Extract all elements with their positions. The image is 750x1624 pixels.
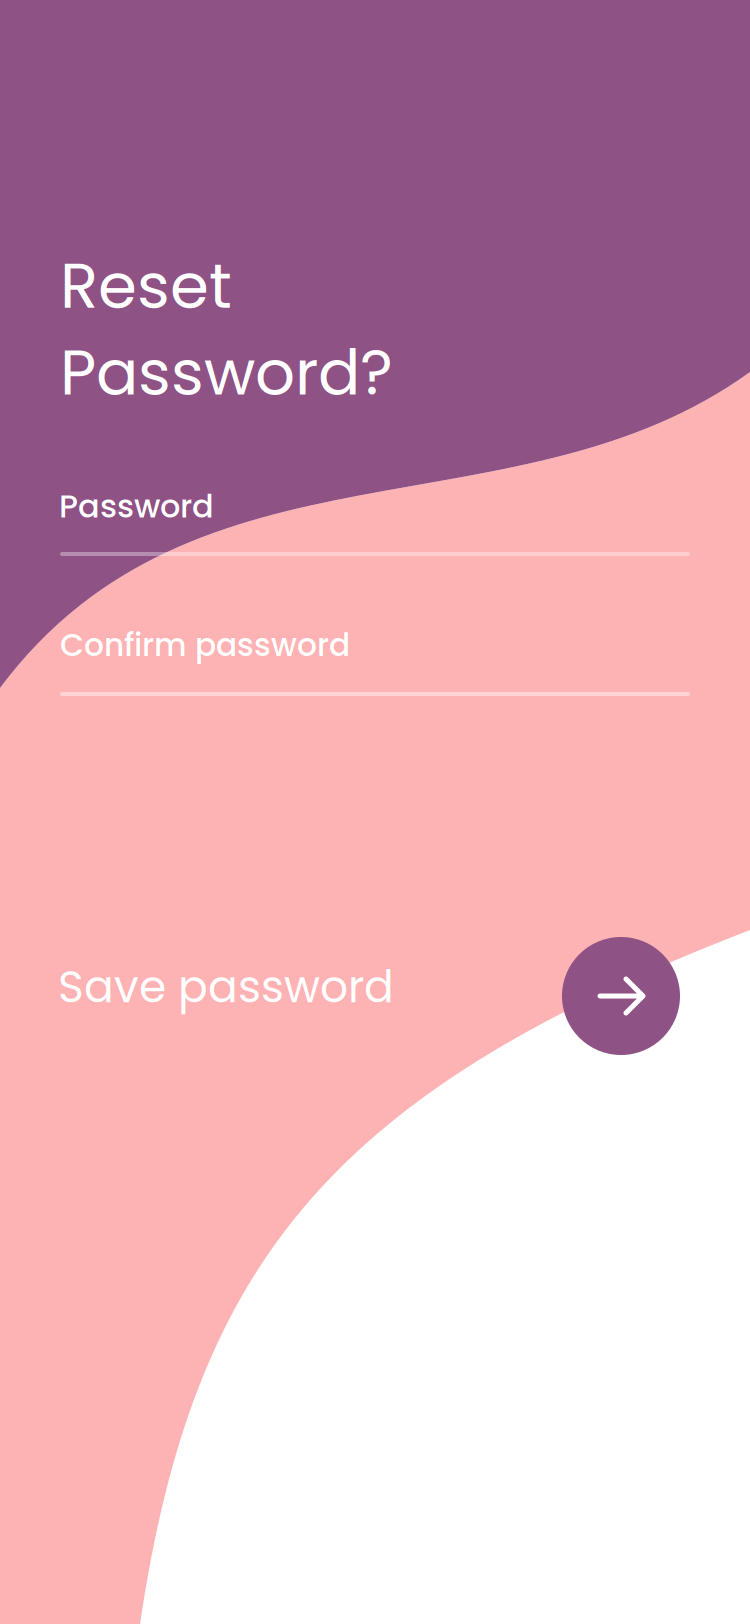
button[interactable]: Continue bbox=[562, 937, 680, 1055]
button[interactable]: Save password bbox=[58, 956, 394, 1018]
staticText: Password bbox=[59, 484, 214, 529]
staticText: Confirm password bbox=[60, 623, 350, 667]
staticText: Save password bbox=[58, 956, 394, 1018]
staticText: Password? bbox=[60, 329, 393, 416]
staticText: Reset bbox=[60, 242, 232, 330]
